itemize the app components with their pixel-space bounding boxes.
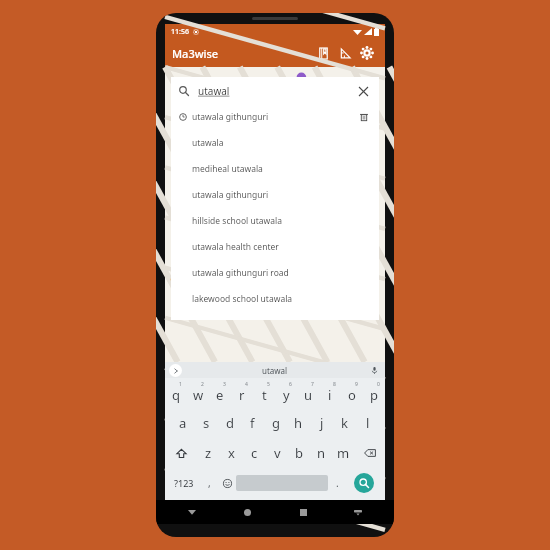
staticText: u: [304, 386, 313, 404]
staticText: 4: [245, 381, 248, 388]
button[interactable]: n: [310, 438, 332, 468]
button[interactable]: utawala githunguri road: [171, 260, 379, 286]
button[interactable]: c: [243, 438, 266, 468]
staticText: q: [172, 386, 180, 404]
button[interactable]: Recents: [293, 502, 313, 522]
button[interactable]: 9: [341, 378, 363, 408]
button[interactable]: Clear: [355, 83, 371, 99]
staticText: 8: [333, 381, 336, 388]
button[interactable]: 7: [297, 378, 319, 408]
button[interactable]: mediheal utawala: [171, 156, 379, 182]
button[interactable]: a: [171, 408, 195, 438]
staticText: y: [283, 386, 290, 404]
staticText: mediheal utawala: [192, 163, 263, 175]
button[interactable]: utawala: [171, 130, 379, 156]
button[interactable]: Hide keyboard: [348, 502, 368, 522]
button[interactable]: ,: [200, 468, 218, 498]
staticText: 6: [289, 381, 292, 388]
button[interactable]: utawala health center: [171, 234, 379, 260]
button[interactable]: Back: [182, 502, 202, 522]
staticText: k: [341, 414, 348, 432]
button[interactable]: m: [332, 438, 354, 468]
button[interactable]: 3: [209, 378, 231, 408]
button[interactable]: x: [220, 438, 243, 468]
staticText: x: [228, 444, 235, 462]
button[interactable]: 0: [363, 378, 385, 408]
button[interactable]: 5: [253, 378, 275, 408]
button[interactable]: j: [310, 408, 333, 438]
button[interactable]: Delete: [357, 110, 371, 124]
button[interactable]: l: [356, 408, 379, 438]
staticText: utawala githunguri road: [192, 267, 289, 279]
button[interactable]: Bookmarks: [312, 42, 334, 64]
staticText: c: [251, 444, 258, 462]
button[interactable]: Expand: [169, 364, 182, 377]
staticText: l: [366, 414, 370, 432]
staticText: hillside school utawala: [192, 215, 282, 227]
button[interactable]: ?123: [168, 468, 200, 498]
staticText: f: [250, 414, 255, 432]
staticText: utawala githunguri: [192, 189, 269, 201]
button[interactable]: Settings: [356, 42, 378, 64]
staticText: s: [203, 414, 210, 432]
button[interactable]: s: [195, 408, 218, 438]
staticText: 5: [267, 381, 270, 388]
button[interactable]: utawala githunguri: [171, 182, 379, 208]
staticText: v: [274, 444, 281, 462]
staticText: j: [320, 414, 324, 432]
button[interactable]: h: [287, 408, 310, 438]
button[interactable]: Home: [237, 502, 257, 522]
staticText: ?123: [174, 477, 194, 489]
staticText: r: [239, 386, 245, 404]
staticText: w: [193, 386, 204, 404]
staticText: 7: [311, 381, 314, 388]
staticText: ,: [208, 476, 211, 490]
button[interactable]: k: [333, 408, 356, 438]
button[interactable]: Shift: [165, 438, 197, 468]
staticText: utawala githunguri: [192, 111, 269, 123]
staticText: 0: [377, 381, 380, 388]
button[interactable]: Backspace: [354, 438, 385, 468]
button[interactable]: z: [197, 438, 220, 468]
button[interactable]: v: [266, 438, 288, 468]
button[interactable]: utawal: [179, 77, 371, 104]
button[interactable]: hillside school utawala: [171, 208, 379, 234]
staticText: z: [205, 444, 212, 462]
button[interactable]: f: [241, 408, 264, 438]
staticText: p: [370, 386, 378, 404]
staticText: a: [179, 414, 187, 432]
button[interactable]: Emoji: [218, 468, 236, 498]
staticText: e: [216, 386, 224, 404]
button[interactable]: 4: [231, 378, 253, 408]
button[interactable]: 8: [319, 378, 341, 408]
button[interactable]: lakewood school utawala: [171, 286, 379, 312]
button[interactable]: b: [288, 438, 310, 468]
staticText: n: [317, 444, 326, 462]
button[interactable]: Search: [354, 473, 374, 493]
staticText: utawal: [262, 365, 288, 376]
staticText: utawala: [192, 137, 224, 149]
staticText: g: [272, 414, 280, 432]
button[interactable]: 2: [187, 378, 209, 408]
button[interactable]: g: [264, 408, 287, 438]
staticText: .: [336, 476, 339, 490]
staticText: m: [337, 444, 350, 462]
staticText: h: [294, 414, 303, 432]
staticText: 3: [223, 381, 226, 388]
staticText: o: [348, 386, 356, 404]
staticText: utawala health center: [192, 241, 279, 253]
staticText: b: [295, 444, 303, 462]
button[interactable]: utawala githunguri: [171, 104, 379, 130]
button[interactable]: d: [218, 408, 241, 438]
button[interactable]: .: [328, 468, 346, 498]
staticText: t: [262, 386, 267, 404]
button[interactable]: 6: [275, 378, 297, 408]
button[interactable]: 1: [165, 378, 187, 408]
staticText: i: [328, 386, 332, 404]
button[interactable]: Measure: [334, 42, 356, 64]
staticText: utawal: [198, 84, 230, 98]
staticText: lakewood school utawala: [192, 293, 293, 305]
staticText: 1: [179, 381, 182, 388]
button[interactable]: Voice input: [368, 364, 381, 377]
